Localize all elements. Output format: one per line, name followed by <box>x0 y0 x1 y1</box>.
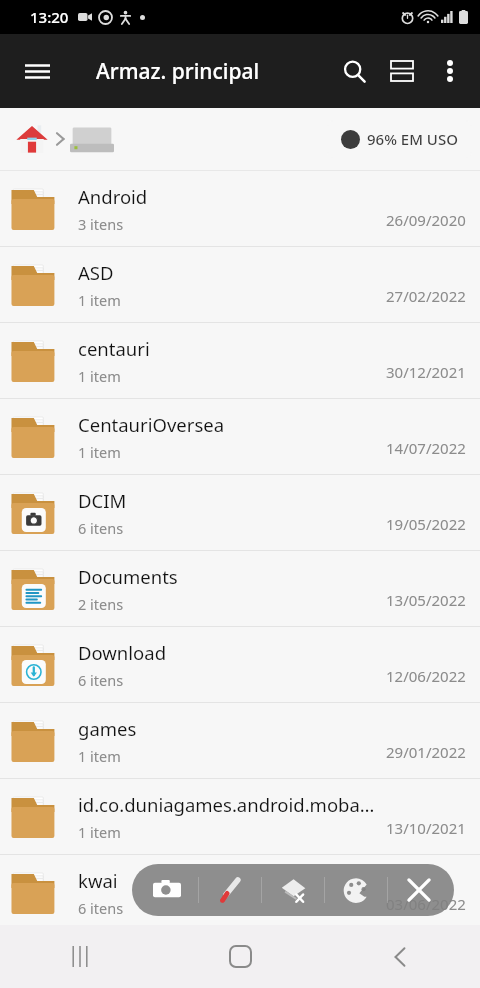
button[interactable]: CentauriOversea <box>0 399 480 475</box>
button[interactable]: Download <box>0 627 480 703</box>
button[interactable]: 96% EM USO <box>327 120 472 158</box>
staticText: CentauriOversea <box>78 412 225 437</box>
staticText: 14/07/2022 <box>386 438 466 458</box>
button[interactable]: More options <box>426 47 474 95</box>
button[interactable]: DCIM <box>0 475 480 551</box>
staticText: 3 itens <box>78 214 124 234</box>
staticText: kwai <box>78 868 118 893</box>
staticText: 1 item <box>78 290 121 310</box>
button[interactable]: Pen <box>199 864 261 916</box>
button[interactable]: Back <box>355 925 445 988</box>
staticText: 2 itens <box>78 594 124 614</box>
button[interactable]: Documents <box>0 551 480 627</box>
button[interactable]: Android <box>0 171 480 247</box>
staticText: DCIM <box>78 488 127 513</box>
staticText: 6 itens <box>78 518 124 538</box>
button[interactable]: Home <box>10 117 54 161</box>
button[interactable]: Eraser <box>262 864 324 916</box>
staticText: 12/06/2022 <box>386 666 466 686</box>
staticText: id.co.duniagames.android.mobafps <box>78 792 378 817</box>
staticText: 13:20 <box>30 7 69 27</box>
button[interactable]: Capture screenshot <box>136 864 198 916</box>
staticText: 0 itens <box>78 965 124 985</box>
button[interactable]: Colour palette <box>325 864 387 916</box>
staticText: centauri <box>78 336 150 361</box>
staticText: 1 item <box>78 822 121 842</box>
staticText: 1 item <box>78 746 121 766</box>
staticText: 1 item <box>78 366 121 386</box>
staticText: 1 item <box>78 442 121 462</box>
button[interactable]: Close <box>388 864 450 916</box>
button[interactable]: Recent apps <box>35 925 125 988</box>
button[interactable]: id.co.duniagames.android.mobafps <box>0 779 480 855</box>
staticText: Armaz. principal <box>96 57 260 86</box>
staticText: 29/01/2022 <box>386 742 466 762</box>
staticText: 96% EM USO <box>367 129 458 149</box>
staticText: 03/06/2022 <box>386 894 466 914</box>
button[interactable]: LOST.DIR <box>0 931 480 988</box>
staticText: 01/01/2022 <box>386 961 466 981</box>
staticText: 26/09/2020 <box>386 210 466 230</box>
staticText: 30/12/2021 <box>386 362 466 382</box>
staticText: 13/10/2021 <box>386 818 466 838</box>
button[interactable]: Change view <box>378 47 426 95</box>
staticText: Android <box>78 184 148 209</box>
button[interactable]: Internal storage <box>66 117 118 161</box>
staticText: games <box>78 716 137 741</box>
button[interactable]: ASD <box>0 247 480 323</box>
button[interactable]: centauri <box>0 323 480 399</box>
button[interactable]: games <box>0 703 480 779</box>
button[interactable]: kwai <box>0 855 480 931</box>
staticText: 19/05/2022 <box>386 514 466 534</box>
staticText: Documents <box>78 564 178 589</box>
staticText: 6 itens <box>78 898 124 918</box>
staticText: LOST.DIR <box>78 935 158 960</box>
button[interactable]: Open navigation drawer <box>14 48 60 94</box>
staticText: Download <box>78 640 167 665</box>
staticText: ASD <box>78 260 114 285</box>
staticText: 27/02/2022 <box>386 286 466 306</box>
staticText: 13/05/2022 <box>386 590 466 610</box>
staticText: 6 itens <box>78 670 124 690</box>
button[interactable]: Home <box>195 925 285 988</box>
button[interactable]: Search <box>330 47 378 95</box>
